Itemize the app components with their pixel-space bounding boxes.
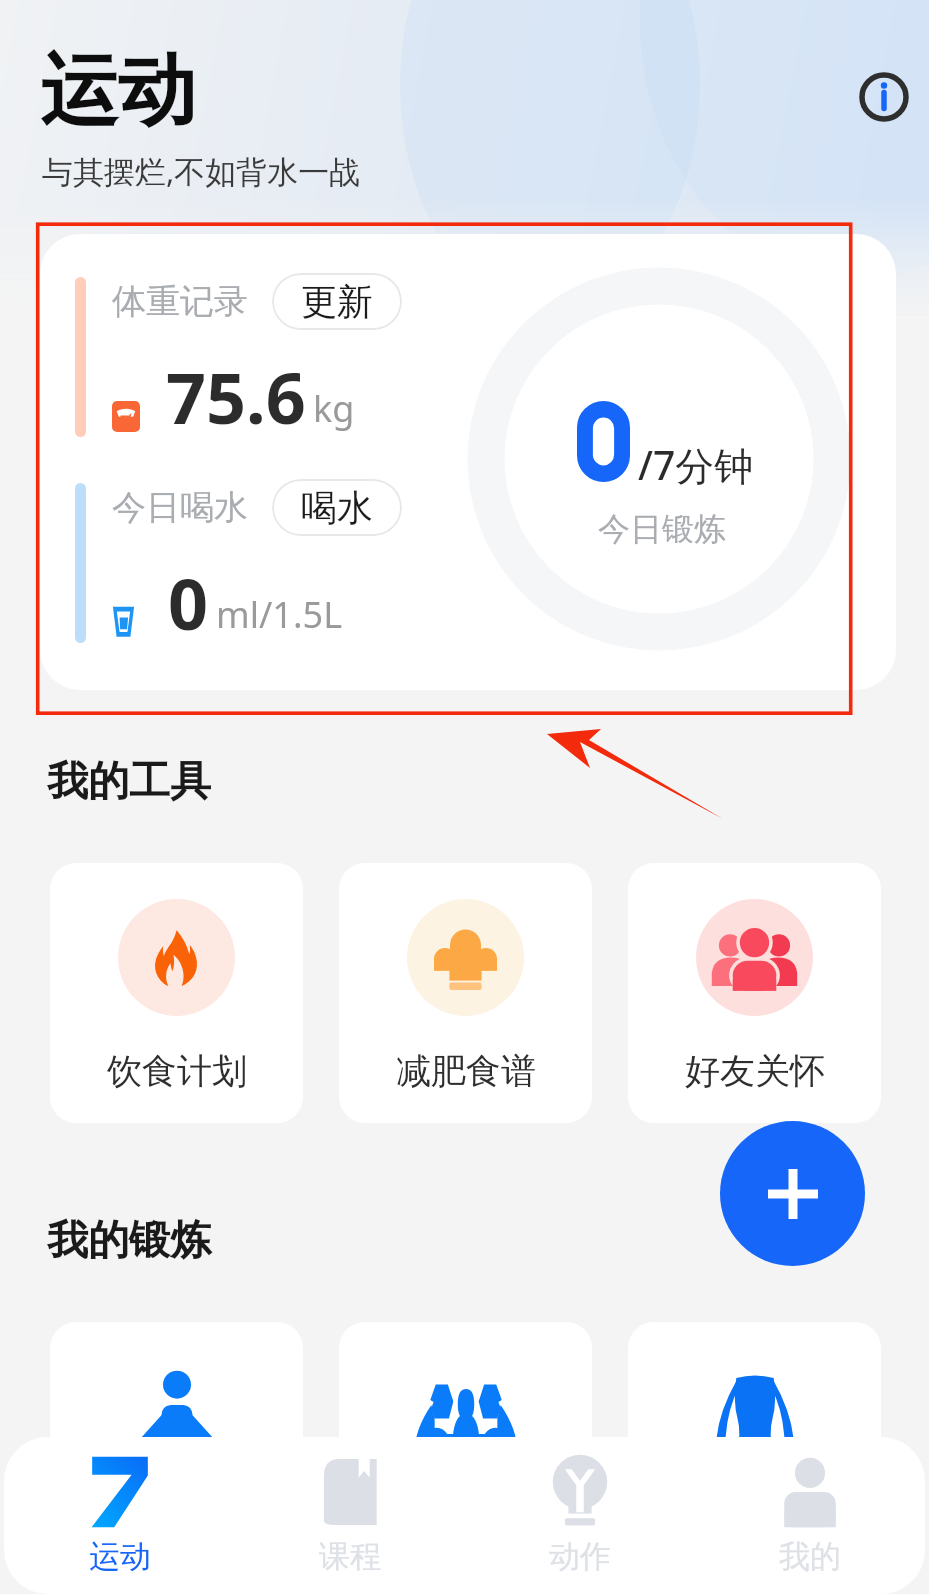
staticText: 好友关怀 bbox=[685, 1049, 825, 1093]
button[interactable]: Info bbox=[855, 68, 913, 126]
staticText: 体重记录 bbox=[112, 280, 248, 323]
staticText: kg bbox=[313, 384, 355, 433]
button[interactable]: 更新 bbox=[272, 273, 402, 330]
button[interactable]: 我的 bbox=[695, 1437, 925, 1594]
staticText: 75.6 bbox=[166, 349, 306, 444]
button[interactable] bbox=[339, 1322, 592, 1588]
button[interactable]: 喝水 bbox=[272, 479, 402, 536]
staticText: 课程 bbox=[319, 1537, 381, 1576]
button[interactable]: 动作 bbox=[465, 1437, 695, 1594]
staticText: 我的 bbox=[779, 1537, 841, 1576]
staticText: 更新 bbox=[301, 279, 373, 324]
button[interactable]: /7分钟 bbox=[40, 234, 896, 690]
staticText: 今日喝水 bbox=[112, 486, 248, 529]
button[interactable] bbox=[50, 1322, 303, 1588]
staticText: 运动 bbox=[89, 1537, 151, 1576]
staticText: 我的锻炼 bbox=[47, 1215, 211, 1267]
button[interactable]: 饮食计划 bbox=[50, 863, 303, 1123]
button[interactable]: 课程 bbox=[235, 1437, 465, 1594]
staticText: 我的工具 bbox=[47, 756, 211, 808]
staticText: 减肥食谱 bbox=[396, 1049, 536, 1093]
staticText: 动作 bbox=[549, 1537, 611, 1576]
staticText: ml/1.5L bbox=[216, 590, 343, 639]
staticText: 运动 bbox=[40, 42, 196, 140]
staticText: /7分钟 bbox=[638, 438, 754, 491]
staticText: 喝水 bbox=[301, 485, 373, 530]
staticText: 0 bbox=[168, 555, 209, 650]
button[interactable] bbox=[628, 1322, 881, 1588]
button[interactable]: 减肥食谱 bbox=[339, 863, 592, 1123]
button[interactable]: 好友关怀 bbox=[628, 863, 881, 1123]
staticText: 饮食计划 bbox=[107, 1049, 247, 1093]
button[interactable]: Add bbox=[720, 1121, 865, 1266]
staticText: 今日锻炼 bbox=[598, 509, 726, 549]
staticText: 与其摆烂,不如背水一战 bbox=[42, 150, 361, 192]
button[interactable]: 运动 bbox=[4, 1437, 235, 1594]
